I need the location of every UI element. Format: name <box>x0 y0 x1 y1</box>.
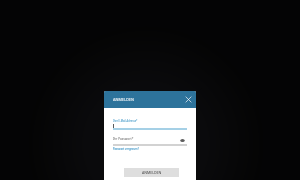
button[interactable]: Schliessen <box>184 95 193 104</box>
staticText: Passwort vergessen? <box>113 147 139 151</box>
staticText: ANMELDEN <box>113 97 134 102</box>
staticText: ANMELDEN <box>142 170 162 175</box>
button[interactable]: Passwort vergessen? <box>113 146 139 150</box>
button[interactable]: Ihr Passwort <box>113 135 187 146</box>
button[interactable]: ANMELDEN <box>124 168 179 177</box>
staticText: Ihr Passwort* <box>113 137 134 141</box>
button[interactable]: Passwort anzeigen <box>179 137 185 143</box>
staticText: Ihre E-Mail-Adresse* <box>113 119 138 122</box>
button[interactable]: Ihre E-Mail-Adresse <box>113 117 187 130</box>
